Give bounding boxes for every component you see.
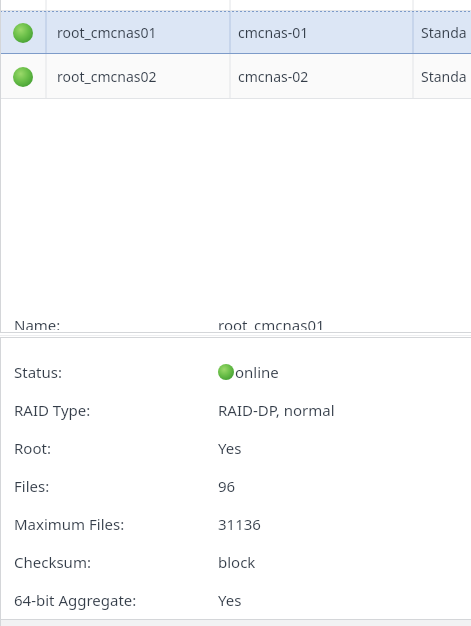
staticText: Standa [421, 23, 467, 42]
staticText: Standa [421, 67, 467, 86]
staticText: cmcnas-02 [238, 67, 309, 86]
staticText: Yes [218, 590, 242, 610]
staticText: block [218, 552, 256, 572]
staticText: root_cmcnas01 [218, 315, 325, 330]
button[interactable]: 64-bit Aggregate: [0, 581, 471, 619]
staticText: Status: [14, 362, 62, 382]
button[interactable]: Name: [0, 315, 471, 330]
button[interactable]: Root: [0, 429, 471, 467]
staticText: Checksum: [14, 552, 91, 572]
staticText: cmcnas-01 [238, 23, 309, 42]
staticText: Files: [14, 476, 50, 496]
button[interactable]: RAID Type: [0, 391, 471, 429]
button[interactable]: root_cmcnas01 [0, 11, 471, 54]
staticText: Maximum Files: [14, 514, 125, 534]
button[interactable]: Status: [0, 353, 471, 391]
button[interactable]: Checksum: [0, 543, 471, 581]
staticText: Yes [218, 438, 242, 458]
staticText: Root: [14, 438, 51, 458]
button[interactable]: Files: [0, 467, 471, 505]
staticText: root_cmcnas01 [57, 23, 157, 42]
button[interactable]: Maximum Files: [0, 505, 471, 543]
staticText: online [235, 362, 279, 382]
staticText: 96 [218, 476, 236, 496]
staticText: 64-bit Aggregate: [14, 590, 137, 610]
staticText: RAID Type: [14, 400, 91, 420]
staticText: root_cmcnas02 [57, 67, 157, 86]
staticText: 31136 [218, 514, 261, 534]
staticText: RAID-DP, normal [218, 400, 335, 420]
button[interactable]: root_cmcnas02 [0, 54, 471, 99]
staticText: Name: [14, 315, 61, 330]
